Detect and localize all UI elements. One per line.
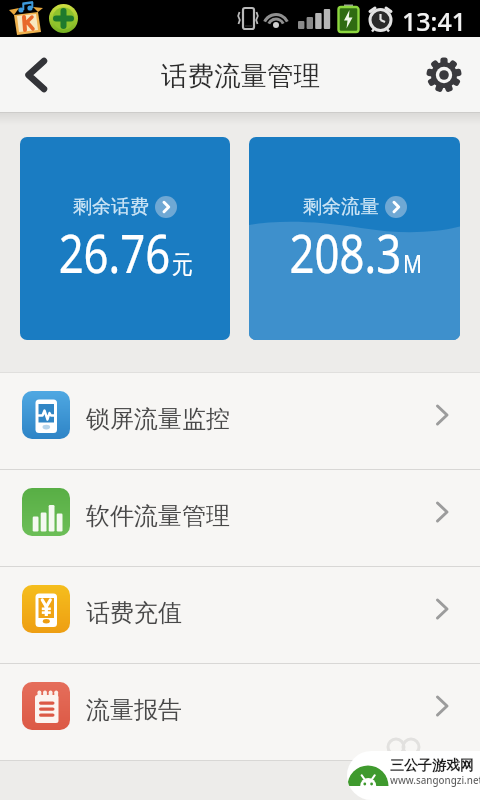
- staticText: 三公子游戏网: [390, 757, 474, 775]
- staticText: M: [403, 246, 422, 280]
- staticText: 话费充值: [86, 598, 182, 628]
- button[interactable]: [416, 45, 472, 105]
- button[interactable]: 剩余话费: [20, 137, 230, 340]
- staticText: 26.76: [59, 217, 170, 288]
- staticText: 208.3: [289, 217, 401, 288]
- button[interactable]: 流量报告: [0, 658, 480, 754]
- staticText: www.sangongzi.net: [390, 774, 480, 787]
- staticText: 软件流量管理: [86, 501, 230, 531]
- staticText: 元: [172, 249, 193, 280]
- staticText: 锁屏流量监控: [86, 404, 230, 434]
- button[interactable]: 剩余流量: [249, 137, 460, 340]
- staticText: 剩余流量: [303, 195, 379, 219]
- button[interactable]: 话费充值: [0, 561, 480, 657]
- staticText: 13:41: [402, 4, 467, 38]
- staticText: 剩余话费: [73, 195, 149, 219]
- staticText: 话费流量管理: [161, 59, 320, 92]
- button[interactable]: [8, 45, 64, 105]
- staticText: 流量报告: [86, 695, 182, 725]
- button[interactable]: 三公子游戏网: [347, 751, 480, 800]
- button[interactable]: 锁屏流量监控: [0, 367, 480, 463]
- button[interactable]: 软件流量管理: [0, 464, 480, 560]
